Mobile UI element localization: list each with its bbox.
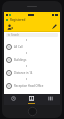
- button[interactable]: Edit: [51, 23, 58, 30]
- staticText: Distance in 14: [14, 71, 33, 75]
- staticText: Search: [11, 33, 20, 37]
- button[interactable]: Profile: [6, 23, 13, 30]
- staticText: Reception Head Office: [14, 84, 44, 88]
- button[interactable]: Keypad: [41, 94, 60, 105]
- button[interactable]: Recents: [4, 94, 22, 105]
- button[interactable]: Contacts: [22, 94, 41, 105]
- staticText: Buildings: [14, 58, 27, 62]
- button[interactable]: Search: [6, 33, 58, 37]
- button[interactable]: Buildings: [4, 55, 60, 64]
- staticText: All Call: [14, 45, 23, 49]
- button[interactable]: Reception Head Office: [4, 81, 60, 90]
- button[interactable]: All Call: [4, 42, 60, 51]
- button[interactable]: Distance in 14: [4, 68, 60, 77]
- staticText: Registered: [10, 18, 26, 22]
